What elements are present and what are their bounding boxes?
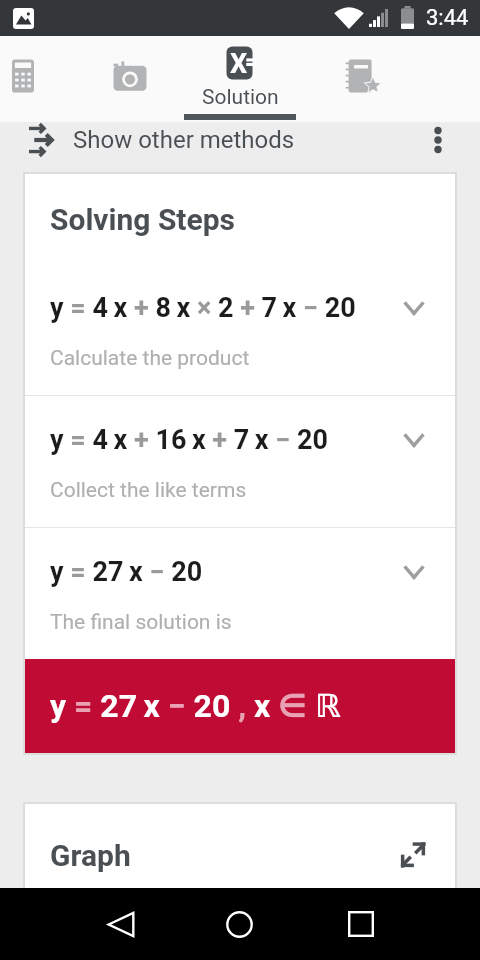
staticText: The final solution is [50,610,232,635]
staticText: Calculate the product [50,346,250,371]
button[interactable]: Calculator [0,36,45,122]
button[interactable]: Back [93,896,149,952]
button[interactable]: More options [420,122,456,158]
button[interactable]: Expand graph [393,835,433,875]
staticText: Solution [202,85,279,110]
other: Screenshot notification [13,8,34,29]
staticText: y = 4 x + 8 x × 2 + 7 x − 20 [50,292,356,324]
button[interactable]: Favorites [315,36,405,122]
staticText: y = 27 x − 20 , x ∈ ℝ [50,687,341,725]
button[interactable]: Graph [25,804,455,958]
button[interactable]: y = 4 x + 16 x + 7 x − 20 [25,396,455,527]
button[interactable]: Show other methods [0,122,480,158]
button[interactable]: X [175,36,305,122]
staticText: y = 4 x + 16 x + 7 x − 20 [50,424,329,456]
staticText: Show other methods [73,126,295,154]
staticText: y = 27 x − 20 [50,556,203,588]
button[interactable]: Camera [84,36,175,122]
staticText: 3:44 [426,5,469,31]
button[interactable]: y = 27 x − 20 , x ∈ ℝ [25,659,455,753]
staticText: Collect the like terms [50,478,247,503]
button[interactable]: y = 27 x − 20 [25,528,455,659]
staticText: Graph [50,838,131,873]
staticText: X [230,48,248,80]
staticText: Solving Steps [50,202,236,237]
button[interactable]: y = 4 x + 8 x × 2 + 7 x − 20 [25,264,455,395]
button[interactable]: Recents [333,896,389,952]
button[interactable]: Home [211,896,267,952]
